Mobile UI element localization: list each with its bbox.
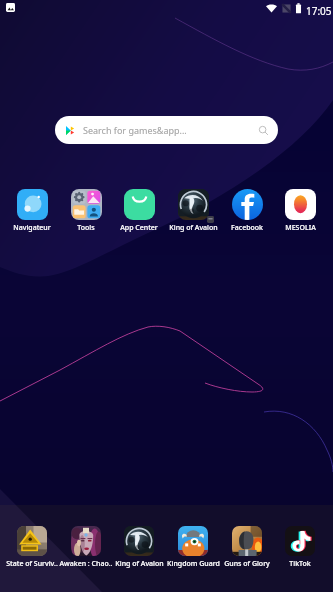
staticText: King of Avalon [169, 223, 218, 233]
button[interactable]: Tools [59, 189, 113, 233]
button[interactable]: App Center [112, 189, 166, 233]
button[interactable]: King of Avalon [112, 526, 166, 569]
button[interactable]: MESOLIA [273, 189, 327, 233]
staticText: Tools [77, 223, 95, 233]
staticText: King of Avalon [115, 559, 164, 569]
button[interactable]: King of Avalon [166, 189, 220, 233]
staticText: Navigateur [13, 223, 51, 233]
other: Screenshot notification [6, 3, 15, 12]
button[interactable]: TikTok [273, 526, 327, 569]
staticText: Search for games&app... [83, 124, 187, 136]
button[interactable]: Kingdom Guard [166, 526, 220, 569]
button[interactable]: Search for games&app... [55, 116, 278, 144]
staticText: MESOLIA [285, 223, 316, 233]
button[interactable]: State of Surviv.. [5, 526, 59, 569]
button[interactable]: Facebook [220, 189, 274, 233]
staticText: Kingdom Guard [167, 559, 220, 569]
staticText: Awaken : Chao.. [59, 559, 113, 569]
staticText: TikTok [289, 559, 311, 569]
staticText: Facebook [231, 223, 263, 233]
staticText: 17:05 [306, 4, 332, 18]
staticText: State of Surviv.. [6, 559, 58, 569]
button[interactable]: Awaken : Chao.. [59, 526, 113, 569]
staticText: App Center [120, 223, 158, 233]
staticText: Guns of Glory [224, 559, 270, 569]
button[interactable]: Guns of Glory [220, 526, 274, 569]
button[interactable]: Navigateur [5, 189, 59, 233]
